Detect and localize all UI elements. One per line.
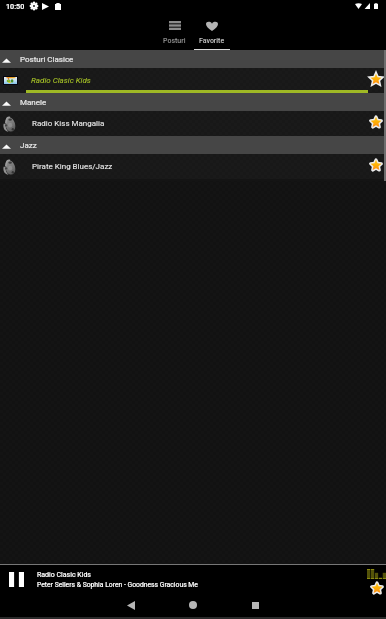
button[interactable]: Radio Clasic Kids bbox=[0, 68, 386, 93]
button[interactable]: Pause bbox=[0, 565, 386, 597]
staticText: 10:50 bbox=[6, 2, 25, 10]
staticText: Posturi bbox=[163, 37, 186, 45]
staticText: Peter Sellers & Sophia Loren - Goodness … bbox=[37, 581, 198, 589]
staticText: Radio Kiss Mangalia bbox=[32, 119, 105, 128]
button[interactable]: Favorite bbox=[368, 72, 384, 87]
button[interactable]: Radio Kiss Mangalia bbox=[0, 111, 386, 136]
staticText: Jazz bbox=[20, 141, 37, 150]
button[interactable]: Home bbox=[162, 594, 224, 616]
button[interactable]: Posturi bbox=[156, 18, 193, 50]
button[interactable]: Posturi Clasice bbox=[0, 50, 386, 68]
staticText: Radio Clasic Kids bbox=[37, 571, 91, 579]
button[interactable]: Favorite bbox=[193, 18, 230, 50]
button[interactable]: Back bbox=[100, 594, 162, 616]
staticText: Radio Clasic Kids bbox=[31, 76, 91, 85]
button[interactable]: Recent apps bbox=[224, 594, 286, 616]
button[interactable]: Manele bbox=[0, 93, 386, 111]
staticText: Pirate King Blues/Jazz bbox=[32, 162, 113, 171]
button[interactable]: Favorite bbox=[368, 115, 384, 130]
staticText: Posturi Clasice bbox=[20, 55, 74, 64]
button[interactable]: Jazz bbox=[0, 136, 386, 154]
button[interactable]: Favorite bbox=[368, 158, 384, 173]
staticText: Manele bbox=[20, 98, 47, 107]
button[interactable]: Pirate King Blues/Jazz bbox=[0, 154, 386, 179]
button[interactable]: Pause bbox=[9, 572, 24, 587]
staticText: Favorite bbox=[199, 37, 225, 45]
